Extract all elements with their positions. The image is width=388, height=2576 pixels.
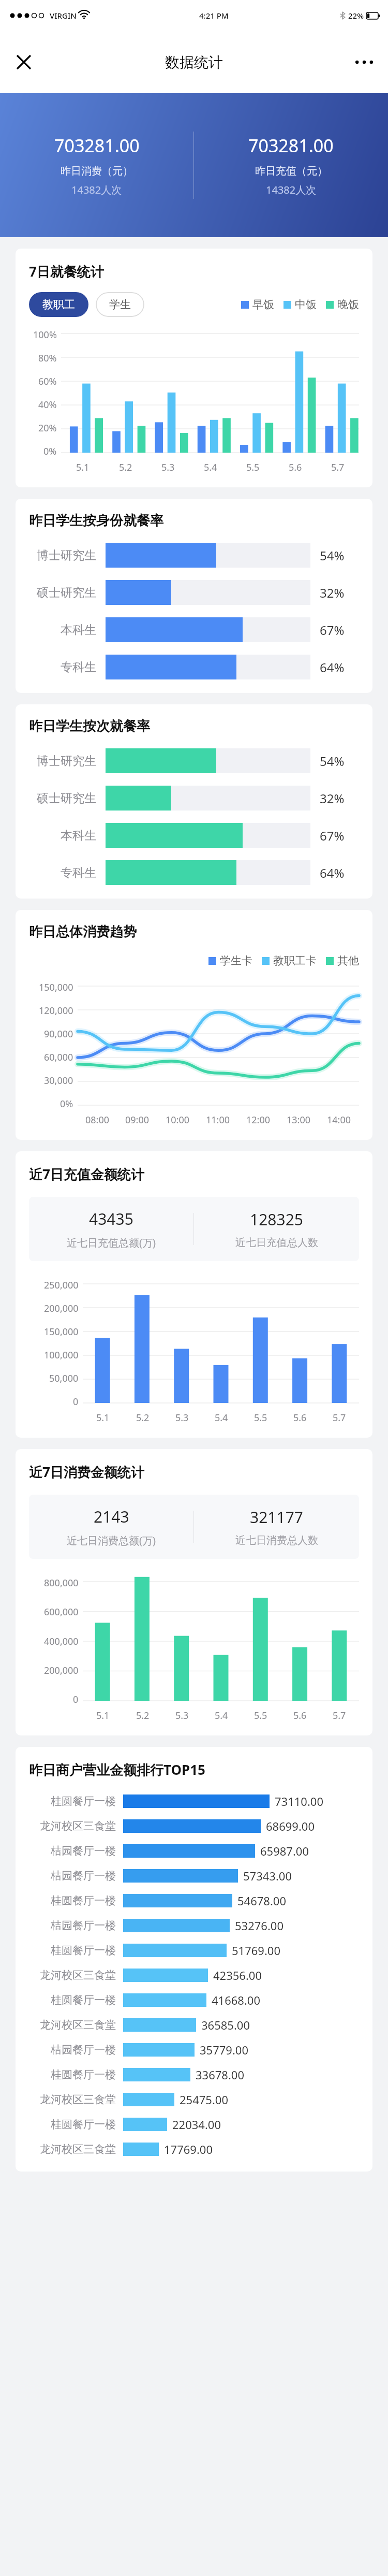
button[interactable]: 桂圆餐厅一楼 [29, 2066, 359, 2083]
staticText: 近7日充值金额统计 [29, 1165, 144, 1183]
staticText: 0 [73, 1395, 79, 1408]
staticText: 近七日充值总额(万) [67, 1236, 156, 1250]
button[interactable]: 2143 [29, 1506, 193, 1547]
button[interactable]: 703281.00 [0, 134, 193, 197]
staticText: 50,000 [49, 1372, 79, 1385]
button[interactable]: 教职工 [29, 292, 88, 317]
staticText: 学生卡 [220, 954, 252, 967]
staticText: 200,000 [44, 1302, 79, 1315]
staticText: 数据统计 [165, 53, 223, 71]
staticText: 22% [348, 10, 364, 21]
staticText: 桂圆餐厅一楼 [29, 1894, 116, 1907]
staticText: 250,000 [44, 1279, 79, 1292]
staticText: 5.6 [293, 1709, 307, 1722]
staticText: 博士研究生 [29, 548, 96, 563]
staticText: 12:00 [246, 1113, 271, 1126]
button[interactable]: 43435 [29, 1208, 193, 1250]
staticText: 近七日消费总额(万) [67, 1533, 156, 1547]
staticText: 32% [320, 790, 359, 807]
button[interactable]: 桔园餐厅一楼 [29, 1842, 359, 1860]
button[interactable]: 703281.00 [194, 134, 388, 197]
staticText: 20% [38, 422, 57, 435]
button[interactable]: 128325 [194, 1209, 359, 1249]
staticText: 龙河校区三食堂 [29, 1969, 116, 1982]
button[interactable]: Close [9, 48, 38, 77]
staticText: 桂圆餐厅一楼 [29, 2068, 116, 2081]
staticText: 晚饭 [337, 298, 359, 311]
button[interactable]: 桔园餐厅一楼 [29, 1867, 359, 1885]
button[interactable]: 桂圆餐厅一楼 [29, 1991, 359, 2009]
staticText: 4:21 PM [199, 10, 229, 21]
staticText: 80% [38, 352, 57, 365]
staticText: 桔园餐厅一楼 [29, 1844, 116, 1858]
button[interactable]: 本科生 [29, 617, 359, 642]
staticText: 昨日学生按身份就餐率 [29, 512, 163, 529]
button[interactable]: 专科生 [29, 655, 359, 679]
staticText: 08:00 [85, 1113, 110, 1126]
button[interactable]: 龙河校区三食堂 [29, 1817, 359, 1835]
staticText: 5.6 [293, 1411, 307, 1424]
button[interactable]: 龙河校区三食堂 [29, 2016, 359, 2034]
staticText: 53276.00 [235, 1918, 283, 1933]
button[interactable]: 专科生 [29, 860, 359, 885]
button[interactable]: 硕士研究生 [29, 786, 359, 811]
staticText: 703281.00 [248, 134, 334, 157]
staticText: 5.5 [254, 1709, 267, 1722]
button[interactable]: 桂圆餐厅一楼 [29, 1942, 359, 1959]
button[interactable]: 学生 [96, 292, 144, 317]
button[interactable]: 龙河校区三食堂 [29, 2140, 359, 2158]
staticText: 25475.00 [180, 2092, 228, 2107]
staticText: 龙河校区三食堂 [29, 2093, 116, 2106]
button[interactable]: 桔园餐厅一楼 [29, 2041, 359, 2059]
button[interactable]: More options [350, 48, 379, 77]
button[interactable]: 博士研究生 [29, 748, 359, 773]
staticText: 54% [320, 547, 359, 564]
staticText: 67% [320, 827, 359, 844]
button[interactable]: 龙河校区三食堂 [29, 2091, 359, 2108]
staticText: 400,000 [44, 1635, 79, 1648]
button[interactable]: 博士研究生 [29, 543, 359, 568]
staticText: 5.1 [96, 1709, 110, 1722]
staticText: 5.2 [136, 1709, 150, 1722]
staticText: 龙河校区三食堂 [29, 1819, 116, 1833]
staticText: 桂圆餐厅一楼 [29, 1993, 116, 2007]
button[interactable]: 本科生 [29, 823, 359, 848]
staticText: 早饭 [252, 298, 274, 311]
staticText: 14:00 [327, 1113, 351, 1126]
button[interactable]: 桂圆餐厅一楼 [29, 2116, 359, 2133]
button[interactable]: 桂圆餐厅一楼 [29, 1892, 359, 1909]
staticText: 其他 [337, 954, 359, 967]
staticText: 41668.00 [212, 1992, 260, 2008]
staticText: 100,000 [44, 1349, 79, 1362]
staticText: 5.4 [215, 1709, 228, 1722]
staticText: 桔园餐厅一楼 [29, 2043, 116, 2057]
button[interactable]: 龙河校区三食堂 [29, 1966, 359, 1984]
button[interactable]: 桂圆餐厅一楼 [29, 1792, 359, 1810]
staticText: 0% [60, 1097, 73, 1110]
staticText: 近七日消费总人数 [235, 1534, 318, 1547]
button[interactable]: 硕士研究生 [29, 580, 359, 605]
staticText: 200,000 [44, 1664, 79, 1677]
staticText: 教职工卡 [273, 954, 317, 967]
staticText: 90,000 [44, 1027, 73, 1040]
staticText: 600,000 [44, 1605, 79, 1618]
staticText: 桔园餐厅一楼 [29, 1919, 116, 1932]
staticText: 桂圆餐厅一楼 [29, 1794, 116, 1808]
button[interactable]: 321177 [194, 1507, 359, 1547]
staticText: 36585.00 [201, 2017, 250, 2033]
staticText: 13:00 [287, 1113, 311, 1126]
staticText: 2143 [94, 1506, 129, 1527]
staticText: 60,000 [44, 1051, 73, 1064]
button[interactable]: 桔园餐厅一楼 [29, 1917, 359, 1934]
staticText: 22034.00 [172, 2117, 221, 2132]
staticText: 40% [38, 398, 57, 411]
staticText: 35779.00 [200, 2042, 248, 2058]
staticText: 专科生 [29, 660, 96, 675]
staticText: 120,000 [39, 1004, 73, 1017]
staticText: 5.3 [175, 1709, 189, 1722]
staticText: 5.4 [204, 461, 217, 474]
staticText: 5.1 [76, 461, 89, 474]
staticText: 11:00 [206, 1113, 230, 1126]
staticText: 本科生 [29, 828, 96, 843]
staticText: 150,000 [39, 981, 73, 994]
